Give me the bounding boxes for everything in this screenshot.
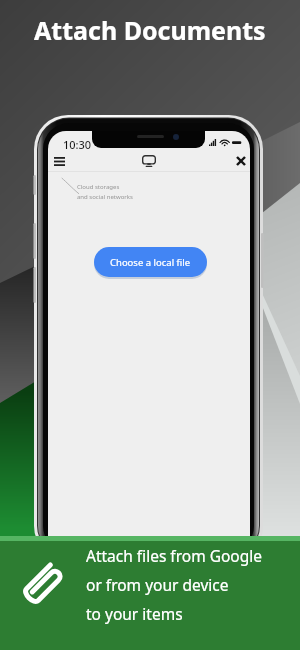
- staticText: Cloud storages: [77, 183, 120, 191]
- staticText: 10:30: [63, 137, 92, 152]
- staticText: to your items: [86, 603, 183, 624]
- button[interactable]: Display: [138, 150, 160, 172]
- button[interactable]: Close: [230, 150, 250, 172]
- staticText: Choose a local file: [110, 256, 191, 269]
- staticText: Attach files from Google: [86, 545, 263, 566]
- button[interactable]: Choose a local file: [94, 247, 207, 277]
- staticText: or from your device: [86, 574, 229, 595]
- staticText: Attach Documents: [34, 13, 266, 47]
- button[interactable]: Menu: [48, 150, 70, 172]
- staticText: and social networks: [77, 193, 133, 201]
